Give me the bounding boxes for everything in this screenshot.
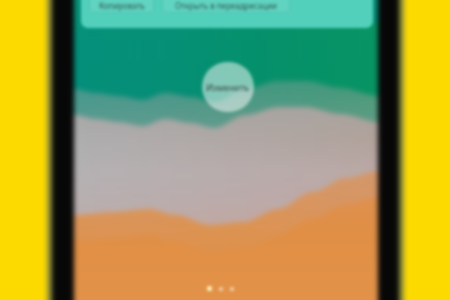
button[interactable]: Копировать	[89, 0, 154, 13]
staticText: Копировать	[99, 0, 145, 11]
staticText: Изменить	[206, 81, 250, 93]
button[interactable]: Изменить	[202, 62, 254, 112]
staticText: Открыть в переадресации	[175, 0, 278, 11]
button[interactable]: Открыть в переадресации	[162, 0, 290, 13]
